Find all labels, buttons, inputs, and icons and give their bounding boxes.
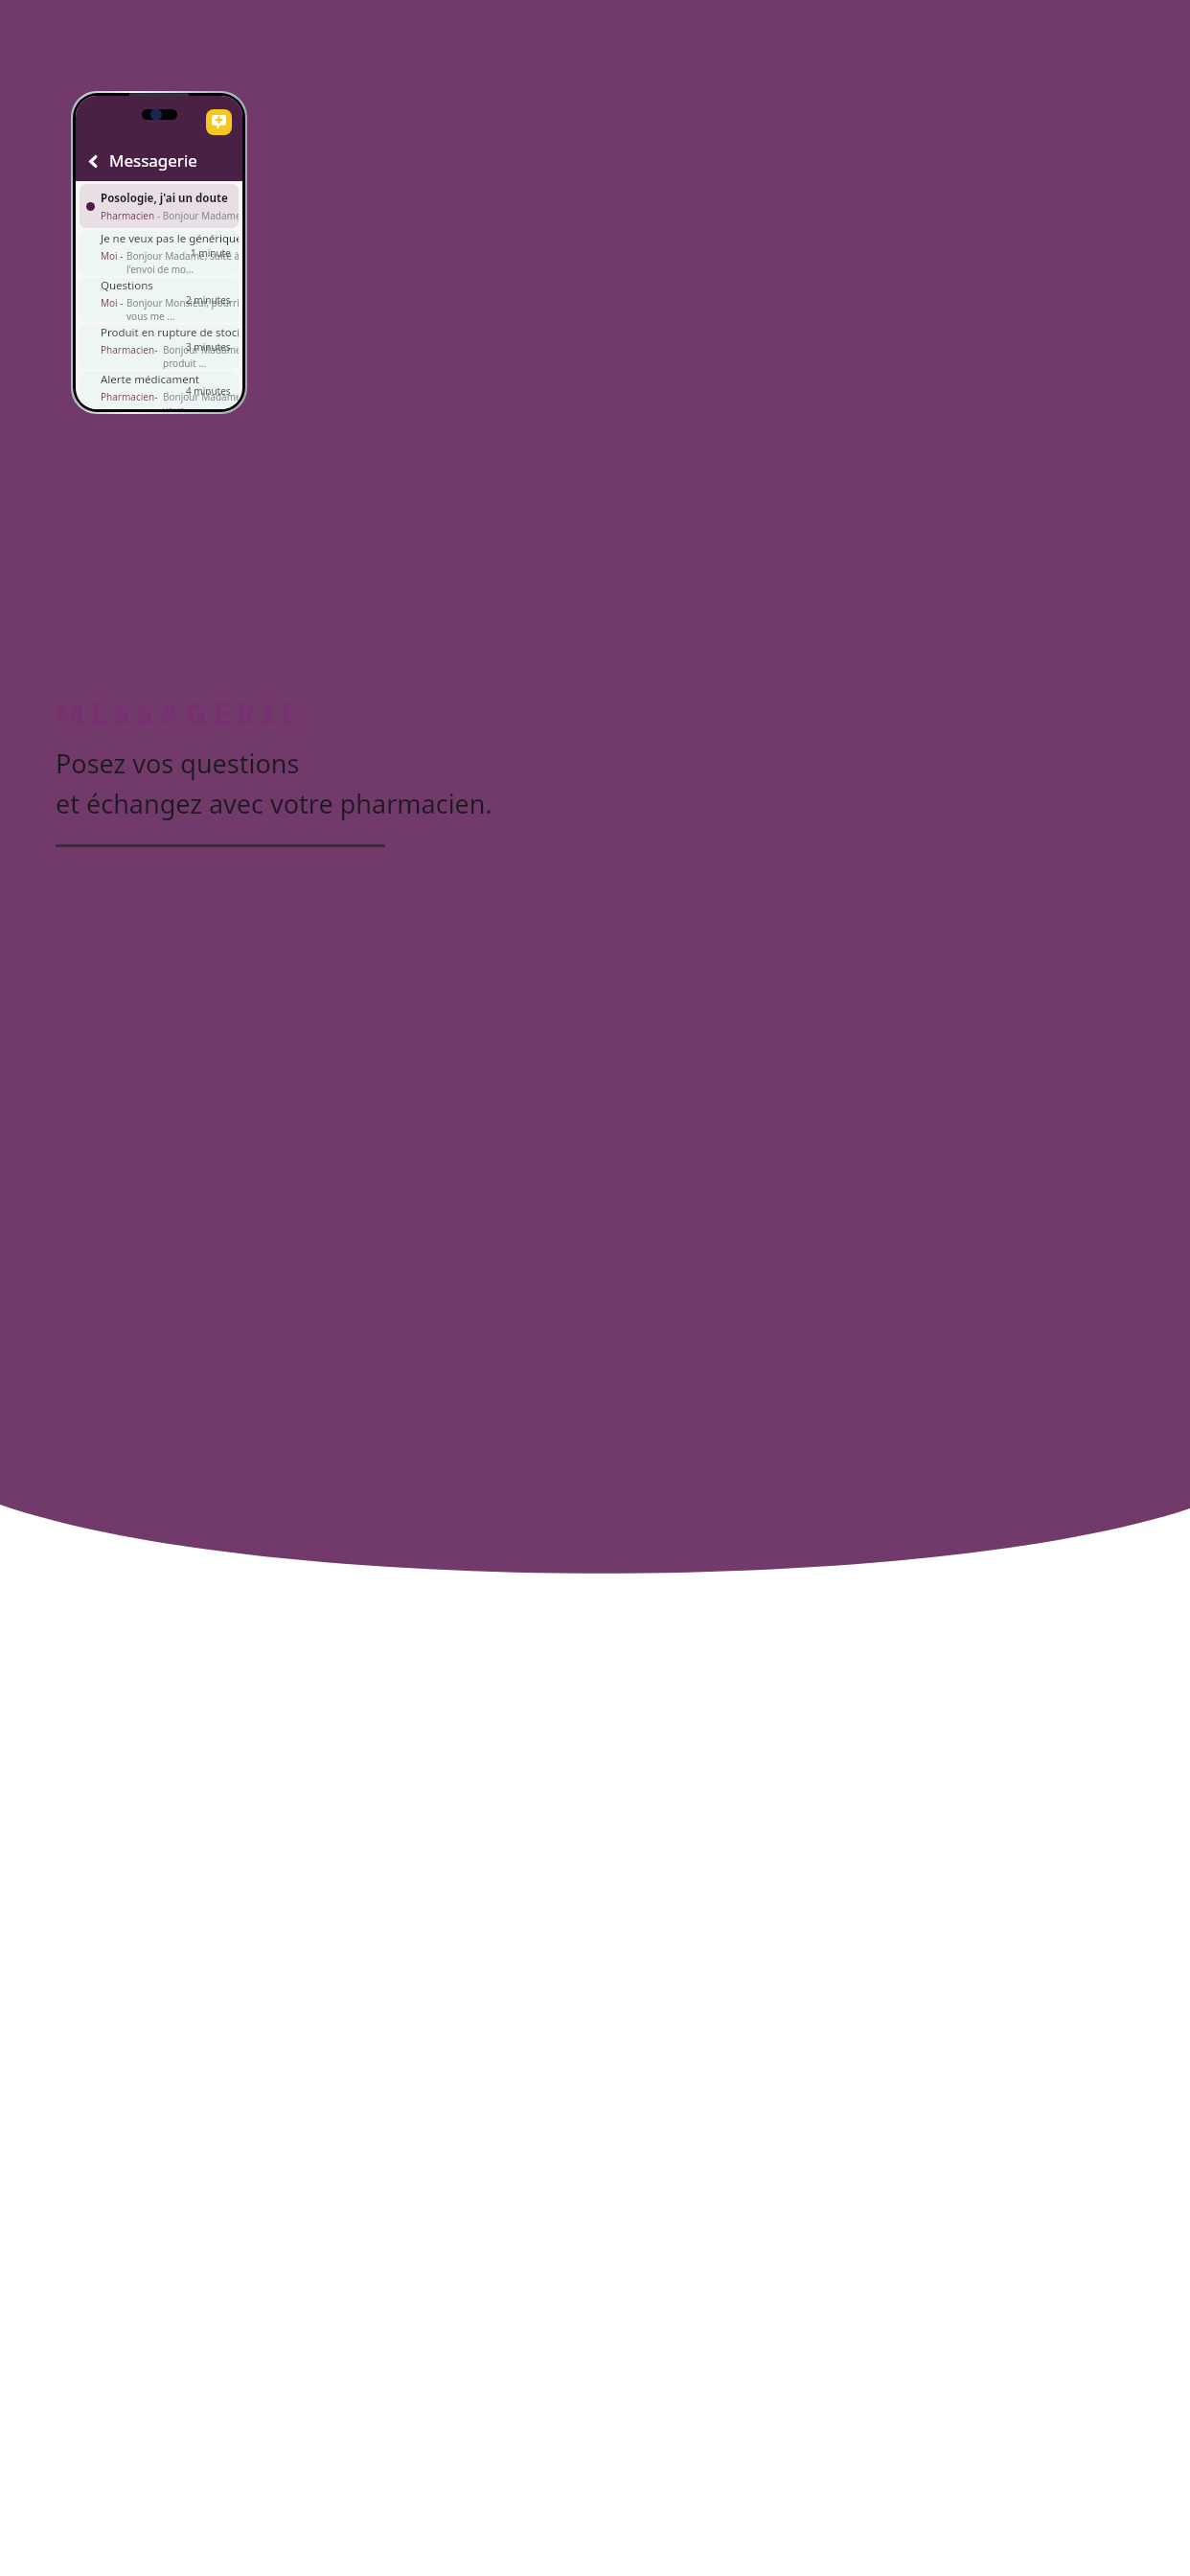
staticText: Bonjour Madame, le produit ...: [163, 343, 239, 369]
staticText: Pharmacien: [101, 209, 157, 222]
staticText: Bonjour Madame, je vous ...: [163, 390, 239, 409]
button[interactable]: Posologie, j'ai un doute: [80, 184, 239, 228]
staticText: Posez vos questions: [56, 746, 300, 781]
staticText: Pharmacien-: [101, 390, 163, 403]
staticText: Alerte médicament: [101, 372, 199, 387]
button[interactable]: New message: [206, 109, 232, 135]
button[interactable]: Produit en rupture de stock: [80, 325, 239, 369]
staticText: Questions: [101, 278, 153, 293]
staticText: Posologie, j'ai un doute: [101, 191, 228, 206]
button[interactable]: Questions: [80, 278, 239, 322]
button[interactable]: Alerte médicament: [80, 372, 239, 409]
staticText: 4 minutes: [186, 384, 231, 398]
staticText: 1 minute: [191, 246, 231, 260]
staticText: Bonjour Madame, suite à l'envoi de mo...: [126, 249, 239, 275]
staticText: Produit en rupture de stock: [101, 325, 239, 340]
button[interactable]: Je ne veux pas le générique: [80, 231, 239, 275]
staticText: Moi -: [101, 249, 126, 263]
staticText: Bonjour Monsieur, pourriez-vous me ...: [126, 296, 239, 322]
staticText: Je ne veux pas le générique: [101, 231, 239, 246]
staticText: et échangez avec votre pharmacien.: [56, 786, 492, 821]
staticText: - Bonjour Madame, ...: [157, 209, 239, 222]
staticText: MESSAGERIE: [56, 693, 304, 733]
staticText: Moi -: [101, 296, 126, 310]
staticText: Pharmacien-: [101, 343, 163, 356]
staticText: 3 minutes: [186, 340, 231, 354]
staticText: Messagerie: [109, 149, 197, 172]
button[interactable]: Back: [82, 150, 103, 172]
staticText: 2 minutes: [186, 293, 231, 307]
